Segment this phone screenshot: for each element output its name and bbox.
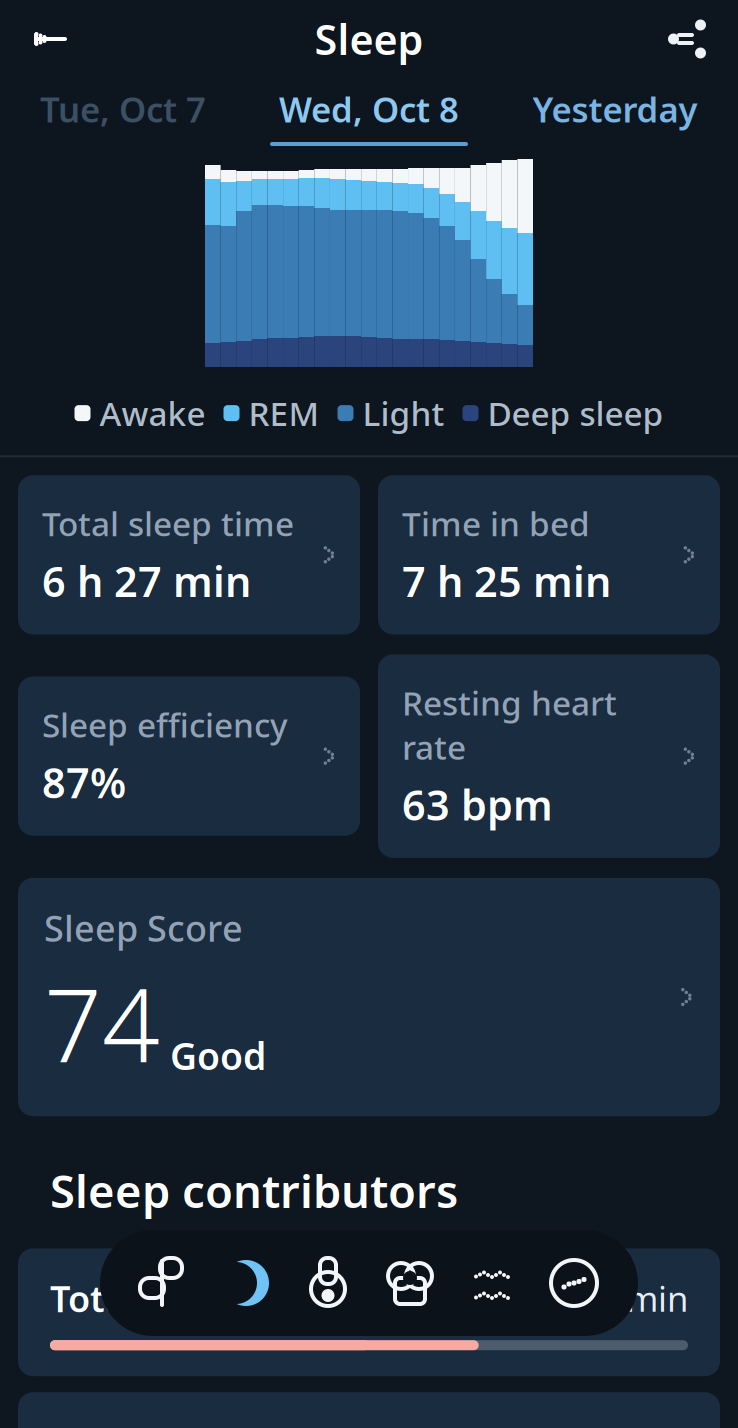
button[interactable]: Energy	[287, 1230, 369, 1336]
staticText: Sleep Score	[44, 904, 243, 952]
staticText: Light	[362, 391, 444, 435]
button[interactable]: Sleep Score	[18, 878, 720, 1116]
staticText: 74	[44, 956, 160, 1090]
staticText: 87%	[42, 755, 126, 810]
staticText: Wed, Oct 8	[279, 86, 459, 132]
button[interactable]: Back	[14, 2, 88, 76]
button[interactable]: Wellness	[123, 1230, 205, 1336]
staticText: REM	[248, 391, 319, 435]
button[interactable]: Share	[650, 2, 724, 76]
button[interactable]: Total sleep	[18, 1248, 720, 1376]
staticText: Sleep	[314, 12, 423, 66]
staticText: Tue, Oct 7	[40, 86, 206, 132]
staticText: Sleep efficiency	[42, 702, 288, 747]
staticText: 6 h 27 min	[42, 553, 251, 608]
staticText: Good	[170, 1031, 266, 1080]
button[interactable]: Stress	[451, 1230, 533, 1336]
button[interactable]: Resting heart rate	[378, 654, 720, 858]
staticText: Yesterday	[532, 86, 697, 132]
button[interactable]: Tue, Oct 7	[0, 78, 246, 154]
button[interactable]: Wed, Oct 8	[246, 78, 492, 154]
button[interactable]: Sleep	[205, 1230, 287, 1336]
staticText: Awake	[99, 391, 205, 435]
button[interactable]: Sleep efficiency	[18, 676, 360, 836]
button[interactable]: Yesterday	[492, 78, 738, 154]
staticText: 63 bpm	[402, 777, 553, 832]
button[interactable]: Total sleep time	[18, 475, 360, 634]
button[interactable]: Heart	[369, 1230, 451, 1336]
staticText: Sleep contributors	[50, 1160, 458, 1220]
staticText: 7 h 25 min	[402, 553, 611, 608]
staticText: Total sleep time	[42, 501, 294, 546]
button[interactable]: Activity	[533, 1230, 615, 1336]
staticText: Total sleep	[50, 1274, 238, 1322]
staticText: Time in bed	[402, 501, 590, 546]
staticText: Deep sleep	[487, 391, 663, 435]
staticText: 6 h 27 min	[518, 1275, 688, 1321]
staticText: Resting heart rate	[402, 680, 617, 769]
button[interactable]: Time in bed	[378, 475, 720, 634]
